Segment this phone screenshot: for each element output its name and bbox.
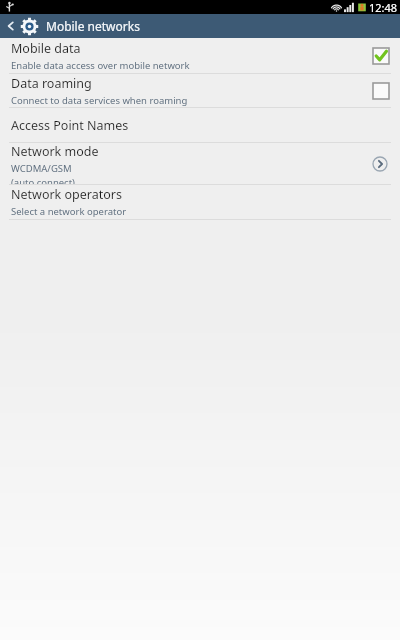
button[interactable]: Back to settings (0, 14, 400, 38)
button[interactable]: Data roaming (0, 74, 400, 107)
button[interactable]: Unchecked (372, 82, 390, 100)
staticText: Enable data access over mobile network (11, 59, 190, 72)
button[interactable]: Checked (372, 47, 390, 65)
button[interactable]: Open network mode (370, 154, 390, 174)
button[interactable]: Access Point Names (0, 108, 400, 142)
staticText: Connect to data services when roaming (11, 94, 188, 107)
staticText: Mobile networks (46, 18, 140, 34)
staticText: Network mode (11, 143, 99, 160)
staticText: Select a network operator (11, 205, 127, 218)
staticText: Network operators (11, 186, 122, 203)
staticText: (auto connect) (11, 176, 75, 184)
button[interactable]: Network mode (0, 143, 400, 184)
staticText: WCDMA/GSM (11, 162, 72, 175)
staticText: Mobile data (11, 40, 81, 57)
staticText: Access Point Names (11, 117, 129, 134)
button[interactable]: Network operators (0, 185, 400, 219)
staticText: Data roaming (11, 75, 92, 92)
button[interactable]: Mobile data (0, 38, 400, 73)
staticText: 12:48 (369, 0, 398, 14)
